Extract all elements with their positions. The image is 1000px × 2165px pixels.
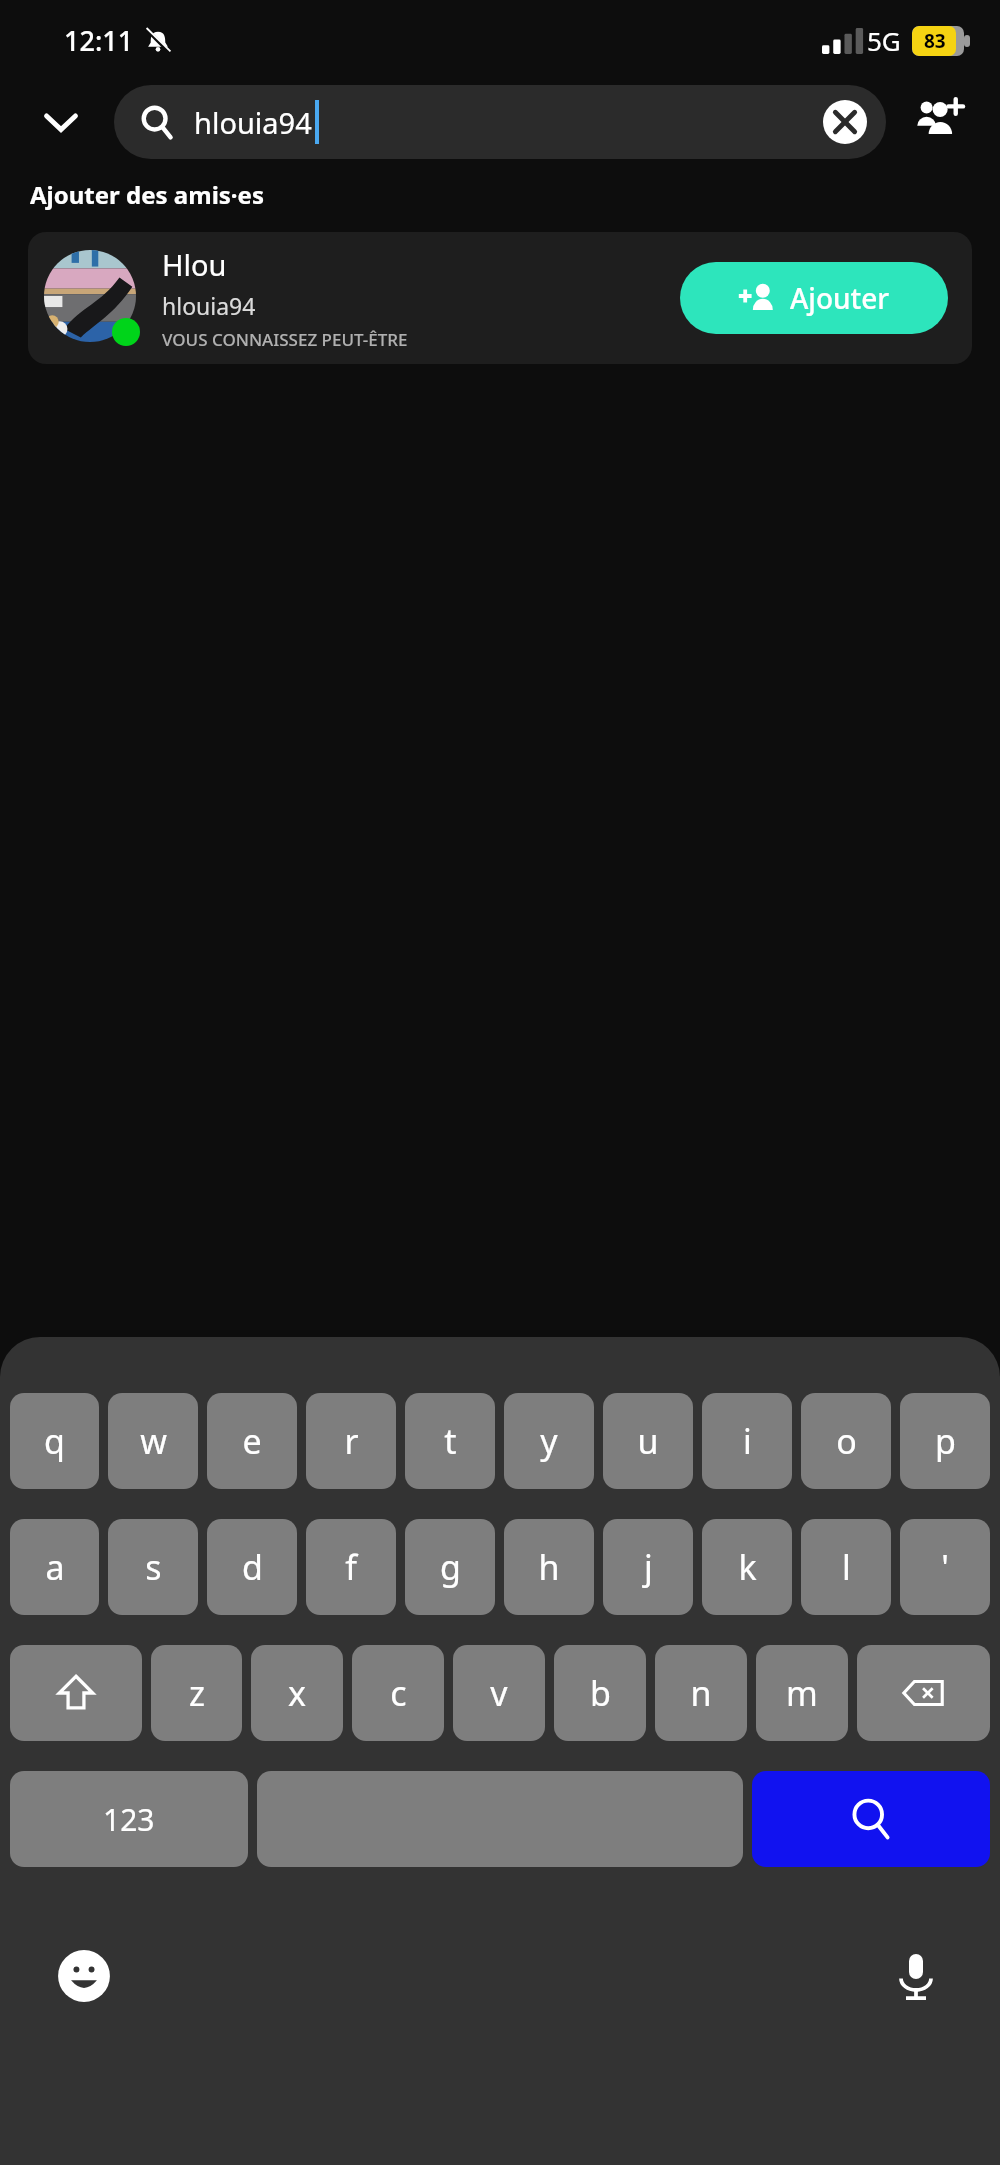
staticText: y: [540, 1418, 558, 1464]
staticText: 12:11: [64, 22, 134, 59]
staticText: ': [941, 1544, 949, 1590]
button[interactable]: m: [756, 1645, 848, 1741]
staticText: s: [145, 1544, 162, 1590]
button[interactable]: i: [702, 1393, 792, 1489]
staticText: w: [140, 1418, 167, 1464]
staticText: j: [644, 1544, 653, 1590]
button[interactable]: t: [405, 1393, 495, 1489]
button[interactable]: c: [352, 1645, 444, 1741]
button[interactable]: e: [207, 1393, 297, 1489]
staticText: i: [743, 1418, 752, 1464]
staticText: g: [440, 1544, 461, 1590]
button[interactable]: hlouia94: [114, 85, 886, 159]
staticText: x: [288, 1670, 306, 1716]
staticText: u: [637, 1418, 659, 1464]
staticText: n: [690, 1670, 712, 1716]
button[interactable]: 123: [10, 1771, 248, 1867]
button[interactable]: s: [108, 1519, 198, 1615]
button[interactable]: a: [10, 1519, 99, 1615]
staticText: hlouia94: [162, 290, 256, 321]
button[interactable]: b: [554, 1645, 646, 1741]
button[interactable]: w: [108, 1393, 198, 1489]
staticText: 83: [924, 28, 946, 54]
button[interactable]: z: [151, 1645, 242, 1741]
staticText: e: [242, 1418, 262, 1464]
button[interactable]: Supprimer: [857, 1645, 990, 1741]
button[interactable]: f: [306, 1519, 396, 1615]
button[interactable]: x: [251, 1645, 343, 1741]
button[interactable]: Emoji: [52, 1944, 116, 2008]
button[interactable]: Micro: [884, 1944, 948, 2008]
button[interactable]: j: [603, 1519, 693, 1615]
button[interactable]: o: [801, 1393, 891, 1489]
button[interactable]: d: [207, 1519, 297, 1615]
staticText: o: [836, 1418, 857, 1464]
staticText: q: [44, 1418, 65, 1464]
staticText: l: [842, 1544, 851, 1590]
button[interactable]: y: [504, 1393, 594, 1489]
button[interactable]: u: [603, 1393, 693, 1489]
button[interactable]: Espace: [257, 1771, 743, 1867]
staticText: z: [189, 1670, 205, 1716]
staticText: b: [590, 1670, 611, 1716]
button[interactable]: Fermer: [30, 91, 92, 153]
staticText: hlouia94: [194, 103, 312, 142]
staticText: h: [538, 1544, 560, 1590]
staticText: k: [738, 1544, 757, 1590]
button[interactable]: k: [702, 1519, 792, 1615]
button[interactable]: Maj: [10, 1645, 142, 1741]
staticText: a: [45, 1544, 65, 1590]
staticText: v: [490, 1670, 508, 1716]
button[interactable]: h: [504, 1519, 594, 1615]
button[interactable]: Effacer: [822, 99, 868, 145]
button[interactable]: r: [306, 1393, 396, 1489]
staticText: 123: [103, 1799, 155, 1840]
staticText: c: [390, 1670, 407, 1716]
staticText: VOUS CONNAISSEZ PEUT-ÊTRE: [162, 328, 408, 351]
staticText: Hlou: [162, 245, 227, 284]
staticText: Ajouter: [790, 279, 890, 317]
button[interactable]: g: [405, 1519, 495, 1615]
staticText: t: [444, 1418, 457, 1464]
staticText: m: [786, 1670, 818, 1716]
staticText: r: [344, 1418, 359, 1464]
button[interactable]: q: [10, 1393, 99, 1489]
staticText: f: [345, 1544, 357, 1590]
staticText: Ajouter des amis·es: [30, 178, 264, 211]
button[interactable]: n: [655, 1645, 747, 1741]
button[interactable]: Rechercher: [752, 1771, 990, 1867]
staticText: d: [242, 1544, 263, 1590]
staticText: 5G: [867, 23, 901, 58]
button[interactable]: v: [453, 1645, 545, 1741]
staticText: p: [935, 1418, 956, 1464]
button[interactable]: Ajouter des amis: [904, 89, 970, 155]
button[interactable]: Hlou: [28, 232, 972, 364]
button[interactable]: ': [900, 1519, 990, 1615]
button[interactable]: l: [801, 1519, 891, 1615]
button[interactable]: Ajouter: [680, 262, 948, 334]
button[interactable]: p: [900, 1393, 990, 1489]
